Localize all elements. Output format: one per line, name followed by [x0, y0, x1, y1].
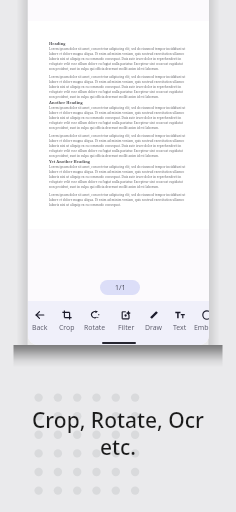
staticText: Lorem ipsum dolor sit amet, consectetur … [49, 165, 187, 189]
staticText: Rotate [84, 323, 106, 332]
staticText: Text [173, 323, 187, 332]
button[interactable]: Rotate [82, 301, 108, 345]
button[interactable]: Emboss [194, 301, 209, 345]
button[interactable]: Draw [141, 301, 167, 345]
staticText: Emboss [194, 323, 209, 332]
staticText: Crop, Rotate, Ocr etc. [32, 406, 204, 461]
button[interactable]: 1/1 [100, 280, 140, 295]
staticText: Lorem ipsum dolor sit amet, consectetur … [49, 193, 187, 207]
staticText: Crop [59, 323, 75, 332]
staticText: Heading [49, 41, 66, 46]
staticText: Yet Another Heading [49, 159, 91, 164]
staticText: Lorem ipsum dolor sit amet, consectetur … [49, 134, 187, 158]
staticText: 1/1 [115, 283, 126, 293]
staticText: Lorem ipsum dolor sit amet, consectetur … [49, 75, 187, 99]
staticText: Filter [118, 323, 135, 332]
button[interactable]: Filter [113, 301, 139, 345]
staticText: Lorem ipsum dolor sit amet, consectetur … [49, 47, 187, 71]
staticText: Draw [145, 323, 163, 332]
button[interactable]: Text [167, 301, 193, 345]
button[interactable]: Crop [54, 301, 80, 345]
button[interactable]: Back [28, 301, 53, 345]
staticText: Lorem ipsum dolor sit amet, consectetur … [49, 106, 187, 130]
staticText: Another Heading [49, 100, 83, 105]
staticText: Back [32, 323, 48, 332]
